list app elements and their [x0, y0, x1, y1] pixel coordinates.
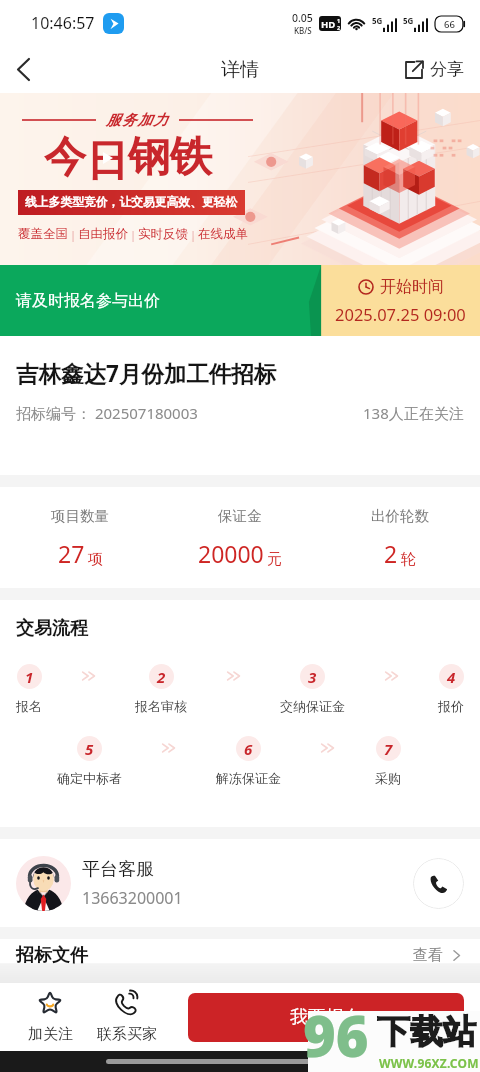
staticText: 138人正在关注 — [363, 403, 464, 423]
staticText: 解冻保证金 — [216, 770, 281, 786]
staticText: 2 — [384, 538, 398, 569]
staticText: 出价轮数 — [371, 507, 429, 525]
staticText: 66 — [434, 18, 465, 31]
button[interactable]: 7 — [375, 736, 401, 786]
staticText: 查看 — [413, 946, 443, 965]
staticText: 交纳保证金 — [280, 698, 345, 714]
staticText: 加关注 — [28, 1025, 73, 1044]
button[interactable]: 联系买家 — [94, 983, 160, 1051]
staticText: 元 — [267, 550, 282, 569]
button[interactable]: Back — [0, 46, 46, 93]
staticText: 日 — [86, 135, 128, 181]
button[interactable]: 4 — [438, 664, 464, 714]
staticText: 请及时报名参与出价 — [16, 291, 160, 311]
staticText: 2 — [157, 667, 166, 687]
button[interactable]: 加关注 — [18, 983, 82, 1051]
staticText: 96 — [303, 997, 369, 1072]
staticText: 下载站 — [377, 1011, 476, 1053]
staticText: 项 — [88, 550, 103, 569]
staticText: 线上多类型竞价，让交易更高效、更轻松 — [25, 195, 238, 210]
staticText: 0.05 — [292, 11, 313, 25]
button[interactable]: 我要报名 — [188, 993, 464, 1042]
staticText: 覆盖全国 — [18, 226, 68, 242]
staticText: 27 — [58, 538, 85, 569]
staticText: 13663200001 — [82, 887, 183, 909]
staticText: 项目数量 — [51, 507, 109, 525]
button[interactable]: 分享 — [404, 46, 464, 93]
staticText: HD — [321, 18, 336, 31]
button[interactable]: 5 — [57, 736, 122, 786]
button[interactable]: 招标文件 — [0, 939, 480, 971]
staticText: 保证金 — [218, 507, 262, 525]
staticText: 5 — [85, 739, 94, 759]
staticText: 今 — [44, 131, 86, 184]
staticText: 确定中标者 — [57, 770, 122, 786]
staticText: 5G — [403, 15, 414, 26]
staticText: 报名 — [16, 698, 42, 714]
staticText: 6 — [244, 739, 253, 759]
staticText: 2 — [337, 24, 341, 31]
staticText: 交易流程 — [16, 617, 88, 640]
button[interactable]: 6 — [216, 736, 281, 786]
staticText: 1 — [337, 17, 341, 24]
staticText: 平台客服 — [82, 858, 154, 881]
staticText: 1 — [25, 667, 34, 687]
staticText: 详情 — [221, 58, 259, 82]
staticText: 自由报价 — [78, 226, 128, 242]
button[interactable]: 1 — [16, 664, 42, 714]
staticText: | — [130, 227, 137, 242]
staticText: WWW.96XZ.COM — [379, 1055, 479, 1071]
button[interactable]: Call — [413, 858, 464, 909]
staticText: 吉林鑫达7月份加工件招标 — [16, 358, 277, 389]
button[interactable]: 3 — [280, 664, 345, 714]
staticText: 3 — [308, 667, 317, 687]
staticText: 采购 — [375, 770, 401, 786]
staticText: 招标文件 — [16, 944, 88, 967]
staticText: | — [190, 227, 197, 242]
staticText: 在线成单 — [198, 226, 248, 242]
staticText: 4 — [447, 667, 456, 687]
staticText: 7 — [384, 739, 393, 759]
staticText: 2025.07.25 09:00 — [335, 303, 466, 325]
staticText: 5G — [372, 15, 383, 26]
staticText: 20000 — [198, 538, 264, 569]
staticText: 轮 — [401, 550, 416, 569]
staticText: | — [70, 227, 77, 242]
staticText: 报价 — [438, 698, 464, 714]
staticText: 招标编号： 202507180003 — [16, 403, 198, 423]
staticText: 分享 — [430, 59, 464, 80]
staticText: 钢铁 — [128, 131, 212, 184]
staticText: 服务加力 — [106, 111, 169, 129]
staticText: 联系买家 — [97, 1025, 157, 1044]
staticText: 开始时间 — [380, 277, 444, 297]
staticText: 10:46:57 — [31, 12, 95, 34]
staticText: 我要报名 — [290, 1006, 362, 1029]
staticText: 报名审核 — [135, 698, 187, 714]
staticText: 实时反馈 — [138, 226, 188, 242]
staticText: KB/S — [294, 25, 312, 36]
button[interactable]: 2 — [135, 664, 187, 714]
